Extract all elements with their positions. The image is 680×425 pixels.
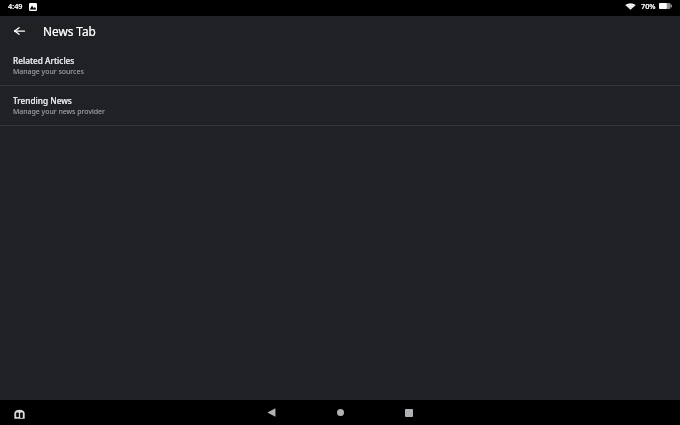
staticText: 4:49	[8, 1, 23, 11]
button[interactable]: Trending News	[0, 86, 680, 125]
staticText: Manage your news provider	[13, 107, 105, 117]
staticText: Manage your sources	[13, 67, 84, 77]
button[interactable]: Back	[248, 400, 294, 425]
button[interactable]: Home	[317, 400, 363, 425]
button[interactable]: Related Articles	[0, 46, 680, 85]
staticText: Trending News	[13, 95, 72, 106]
staticText: Related Articles	[13, 55, 75, 66]
staticText: 70%	[641, 1, 656, 11]
button[interactable]: Screenshot	[8, 402, 30, 424]
staticText: News Tab	[43, 23, 96, 39]
button[interactable]: Back	[7, 19, 31, 43]
button[interactable]: Recents	[386, 400, 432, 425]
